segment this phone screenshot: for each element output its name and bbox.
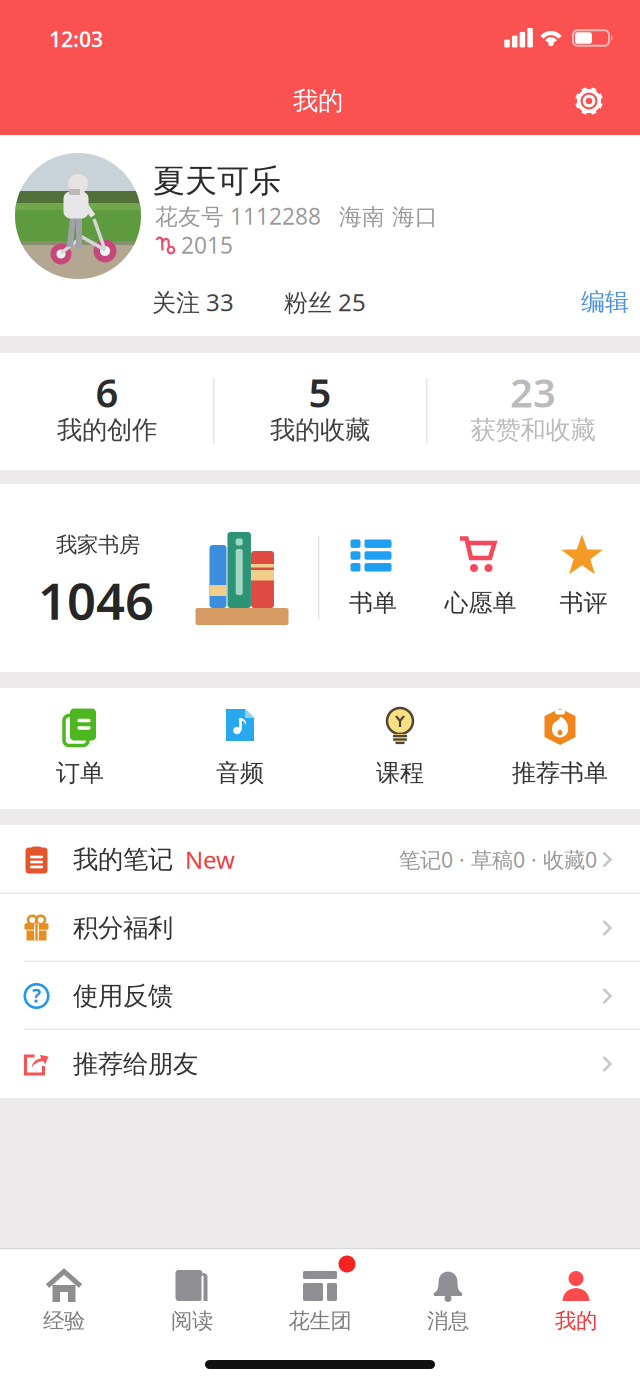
staticText: 心愿单 [444,588,516,618]
button[interactable]: 阅读 [128,1248,256,1348]
button[interactable]: ? [0,962,640,1030]
staticText: 积分福利 [73,912,173,943]
button[interactable]: 消息 [384,1248,512,1348]
staticText: 使用反馈 [73,980,173,1011]
staticText: 经验 [43,1308,85,1334]
button[interactable]: 音频 [160,688,320,809]
staticText: ? [32,983,41,1008]
staticText: 我的收藏 [270,414,370,445]
staticText: 我的笔记 [73,844,173,875]
staticText: 阅读 [171,1308,213,1334]
staticText: 音频 [216,758,264,788]
staticText: 我的 [293,85,343,116]
staticText: 订单 [56,758,104,788]
staticText: 书单 [349,588,397,618]
staticText: New [185,844,235,875]
staticText: 23 [510,365,556,418]
staticText: 1046 [38,566,154,634]
button[interactable]: 积分福利 [0,894,640,962]
button[interactable]: 推荐给朋友 [0,1030,640,1098]
staticText: 推荐给朋友 [73,1048,198,1079]
button[interactable]: 经验 [0,1248,128,1348]
button[interactable]: 我的 [512,1248,640,1348]
button[interactable]: 23 [426,353,639,470]
button[interactable]: 我的笔记 [0,825,640,894]
staticText: 我的创作 [57,414,157,445]
button[interactable]: 推荐书单 [480,688,640,809]
button[interactable]: 书评 [528,484,635,672]
button[interactable]: 书单 [318,484,425,672]
staticText: 我家书房 [56,532,140,558]
staticText: 编辑 [581,287,629,317]
staticText: 12:03 [49,25,103,53]
staticText: 我的 [555,1308,597,1334]
button[interactable]: 我家书房 [0,484,318,672]
staticText: 笔记0 · 草稿0 · 收藏0 [399,845,597,874]
staticText: 消息 [427,1308,469,1334]
staticText: 夏天可乐 [153,161,281,201]
button[interactable]: Settings [565,77,613,125]
staticText: 粉丝 25 [284,286,366,318]
staticText: 关注 33 [152,286,234,318]
staticText: 6 [95,365,118,418]
button[interactable]: 心愿单 [424,484,531,672]
button[interactable]: 5 [213,353,426,470]
staticText: 2015 [181,230,233,260]
button[interactable]: 课程 [320,688,480,809]
staticText: 花友号 1112288 海南 海口 [155,201,438,231]
staticText: 5 [308,365,331,418]
staticText: 书评 [559,588,607,618]
button[interactable]: 花生团 [256,1248,384,1348]
staticText: 获赞和收藏 [470,414,595,445]
staticText: 推荐书单 [512,758,608,788]
button[interactable]: 订单 [0,688,160,809]
button[interactable]: 编辑 [565,280,640,324]
button[interactable]: 6 [0,353,213,470]
staticText: 花生团 [288,1308,351,1334]
staticText: 课程 [376,758,424,788]
